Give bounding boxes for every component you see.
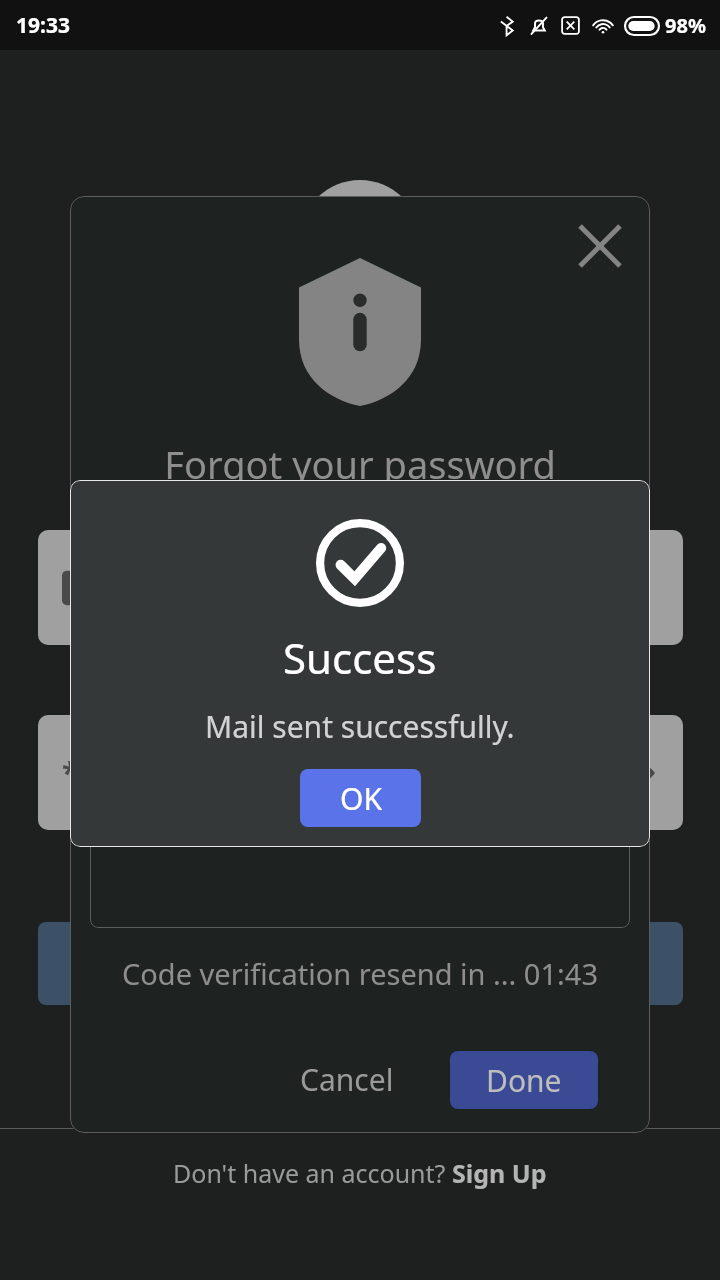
button[interactable]: Cancel [284, 1047, 410, 1112]
button[interactable] [38, 530, 683, 645]
staticText: Done [486, 1060, 562, 1101]
staticText: Mail sent successfully. [205, 706, 515, 747]
button[interactable]: *--- [38, 715, 683, 830]
staticText: OK [340, 778, 382, 819]
staticText: 19:33 [16, 11, 70, 40]
button[interactable] [90, 828, 630, 928]
staticText: *--- [62, 752, 108, 793]
staticText: 98% [665, 12, 706, 39]
staticText: Cancel [300, 1059, 394, 1100]
staticText: Sign Up [452, 1156, 547, 1190]
staticText: Forgot your password [164, 438, 556, 490]
button[interactable]: Don't have an account? [173, 1156, 547, 1190]
staticText: Code verification resend in ... 01:43 [122, 954, 598, 993]
staticText: Success [283, 629, 437, 686]
button[interactable] [38, 922, 683, 1005]
staticText: Don't have an account? [173, 1156, 452, 1190]
button[interactable]: OK [300, 769, 421, 827]
button[interactable]: Close [572, 218, 628, 274]
button[interactable]: Done [450, 1051, 598, 1109]
